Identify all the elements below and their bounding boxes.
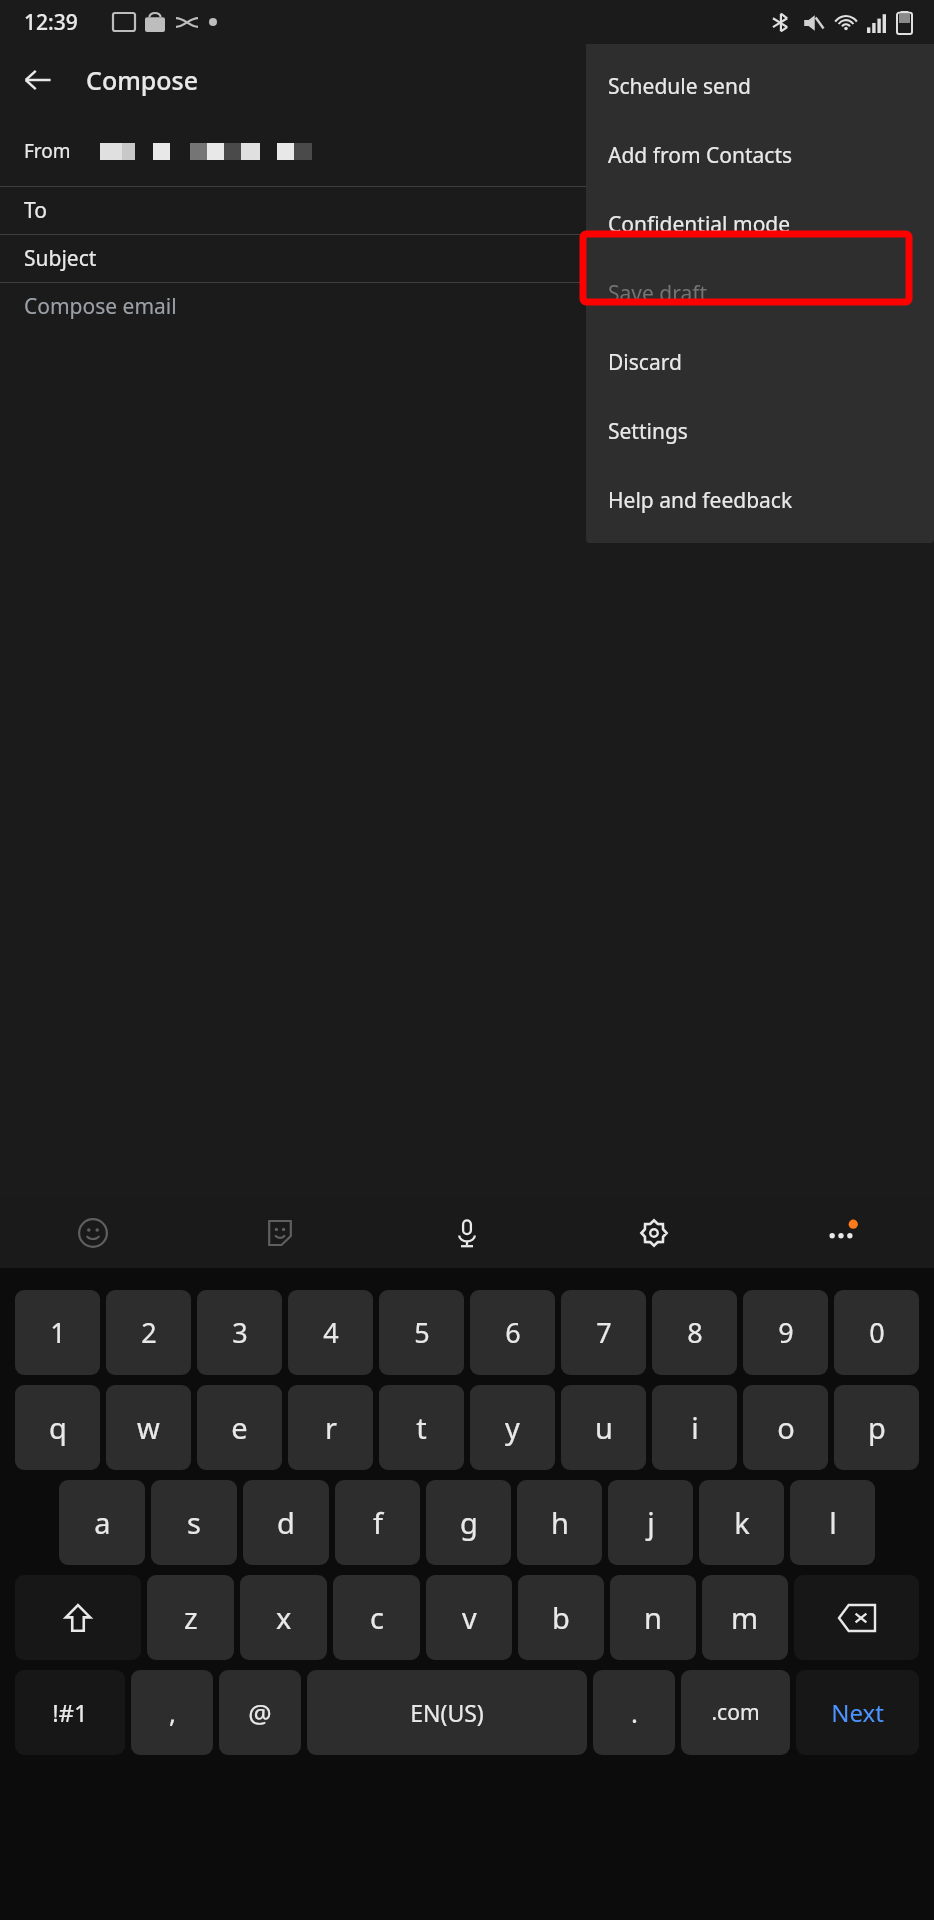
button[interactable]: Back — [10, 52, 66, 108]
button[interactable]: a — [59, 1480, 145, 1565]
staticText: p — [868, 1408, 886, 1447]
button[interactable]: d — [243, 1480, 329, 1565]
button[interactable]: z — [147, 1575, 234, 1660]
button[interactable]: Next — [796, 1670, 919, 1755]
staticText: r — [325, 1408, 337, 1447]
button[interactable]: Backspace — [794, 1575, 919, 1660]
staticText: !#1 — [52, 1696, 88, 1729]
button[interactable]: To — [0, 187, 934, 235]
button[interactable]: 0 — [834, 1290, 919, 1375]
button[interactable]: t — [379, 1385, 464, 1470]
staticText: 6 — [505, 1314, 521, 1351]
button[interactable]: Voice input — [373, 1198, 560, 1268]
staticText: c — [370, 1598, 384, 1637]
staticText: v — [462, 1598, 477, 1637]
staticText: t — [416, 1408, 427, 1447]
staticText: s — [187, 1503, 201, 1542]
staticText: w — [137, 1408, 160, 1447]
staticText: h — [551, 1503, 569, 1542]
staticText: 7 — [596, 1314, 612, 1351]
button[interactable]: 5 — [379, 1290, 464, 1375]
button[interactable]: 7 — [561, 1290, 646, 1375]
button[interactable]: Stickers — [186, 1198, 373, 1268]
staticText: Subject — [24, 244, 97, 273]
staticText: z — [184, 1598, 198, 1637]
staticText: u — [595, 1408, 613, 1447]
staticText: Help and feedback — [608, 486, 793, 515]
button[interactable]: Schedule send — [586, 52, 934, 121]
staticText: f — [373, 1503, 383, 1542]
staticText: . — [631, 1695, 638, 1730]
button[interactable]: Shift — [15, 1575, 141, 1660]
staticText: Discard — [608, 348, 682, 377]
staticText: y — [505, 1408, 520, 1447]
staticText: d — [277, 1503, 295, 1542]
button[interactable]: 1 — [15, 1290, 100, 1375]
button[interactable]: 2 — [106, 1290, 191, 1375]
staticText: q — [49, 1408, 67, 1447]
staticText: From — [24, 138, 71, 164]
staticText: , — [169, 1695, 176, 1730]
button[interactable]: .com — [681, 1670, 790, 1755]
staticText: i — [691, 1408, 699, 1447]
button[interactable]: . — [593, 1670, 675, 1755]
button[interactable]: o — [743, 1385, 828, 1470]
button[interactable]: 4 — [288, 1290, 373, 1375]
button[interactable]: v — [426, 1575, 512, 1660]
button[interactable]: 8 — [652, 1290, 737, 1375]
button[interactable]: r — [288, 1385, 373, 1470]
button[interactable]: !#1 — [15, 1670, 125, 1755]
button[interactable]: c — [333, 1575, 420, 1660]
staticText: Compose email — [24, 292, 177, 321]
button[interactable]: w — [106, 1385, 191, 1470]
button[interactable]: q — [15, 1385, 100, 1470]
button[interactable]: f — [335, 1480, 420, 1565]
button[interactable]: Confidential mode — [586, 190, 934, 259]
button[interactable]: n — [610, 1575, 696, 1660]
button[interactable]: EN(US) — [307, 1670, 587, 1755]
button[interactable]: Settings — [560, 1198, 747, 1268]
button[interactable]: b — [518, 1575, 604, 1660]
button[interactable]: p — [834, 1385, 919, 1470]
staticText: 8 — [687, 1314, 703, 1351]
button[interactable]: l — [790, 1480, 875, 1565]
button[interactable]: i — [652, 1385, 737, 1470]
staticText: 2 — [141, 1314, 157, 1351]
button[interactable]: g — [426, 1480, 511, 1565]
staticText: e — [231, 1408, 248, 1447]
staticText: EN(US) — [410, 1697, 484, 1728]
button[interactable]: u — [561, 1385, 646, 1470]
button[interactable]: 3 — [197, 1290, 282, 1375]
button[interactable]: 6 — [470, 1290, 555, 1375]
staticText: x — [276, 1598, 292, 1637]
staticText: 4 — [323, 1314, 339, 1351]
button[interactable]: Add from Contacts — [586, 121, 934, 190]
staticText: 12:39 — [24, 8, 78, 37]
staticText: Save draft — [608, 279, 708, 308]
button[interactable]: @ — [219, 1670, 301, 1755]
button[interactable]: m — [702, 1575, 788, 1660]
button[interactable]: x — [240, 1575, 327, 1660]
button[interactable]: Subject — [0, 235, 934, 283]
button[interactable]: s — [151, 1480, 237, 1565]
button[interactable]: More options — [747, 1198, 934, 1268]
button[interactable]: Settings — [586, 397, 934, 466]
button[interactable]: Help and feedback — [586, 466, 934, 535]
button[interactable]: y — [470, 1385, 555, 1470]
staticText: j — [647, 1503, 655, 1542]
staticText: k — [734, 1503, 750, 1542]
button[interactable]: Save draft — [586, 259, 934, 328]
staticText: 3 — [232, 1314, 248, 1351]
staticText: To — [24, 196, 47, 225]
button[interactable]: k — [699, 1480, 784, 1565]
button[interactable]: e — [197, 1385, 282, 1470]
button[interactable]: h — [517, 1480, 602, 1565]
button[interactable]: 9 — [743, 1290, 828, 1375]
button[interactable]: , — [131, 1670, 213, 1755]
button[interactable]: Emoji — [0, 1198, 186, 1268]
button[interactable]: Discard — [586, 328, 934, 397]
button[interactable]: j — [608, 1480, 693, 1565]
staticText: @ — [248, 1695, 272, 1730]
staticText: Next — [831, 1696, 884, 1729]
staticText: Schedule send — [608, 72, 751, 101]
